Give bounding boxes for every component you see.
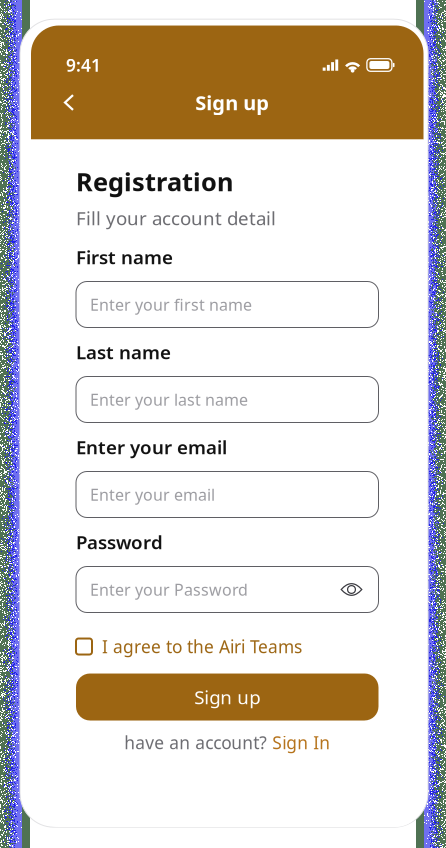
staticText: Sign up <box>194 685 260 709</box>
staticText: Registration <box>76 165 233 198</box>
button[interactable]: Sign In <box>272 731 330 754</box>
staticText: I agree to the Airi Teams <box>102 635 302 658</box>
staticText: Sign In <box>272 731 330 754</box>
staticText: 9:41 <box>66 53 101 76</box>
staticText: Enter your first name <box>90 294 252 315</box>
staticText: Fill your account detail <box>76 206 276 230</box>
button[interactable]: Show password <box>340 581 362 597</box>
staticText: Password <box>76 530 163 554</box>
staticText: Last name <box>76 340 171 364</box>
button[interactable]: Back <box>56 89 82 115</box>
staticText: First name <box>76 245 173 269</box>
staticText: Enter your last name <box>90 389 248 410</box>
button[interactable]: Sign up <box>76 673 378 720</box>
staticText: Enter your email <box>76 435 227 459</box>
staticText: Sign up <box>195 89 269 116</box>
staticText: Enter your email <box>90 484 215 505</box>
staticText: have an account? <box>124 731 272 754</box>
staticText: Enter your Password <box>90 579 248 600</box>
button[interactable]: I agree to the Airi Teams <box>76 637 378 655</box>
